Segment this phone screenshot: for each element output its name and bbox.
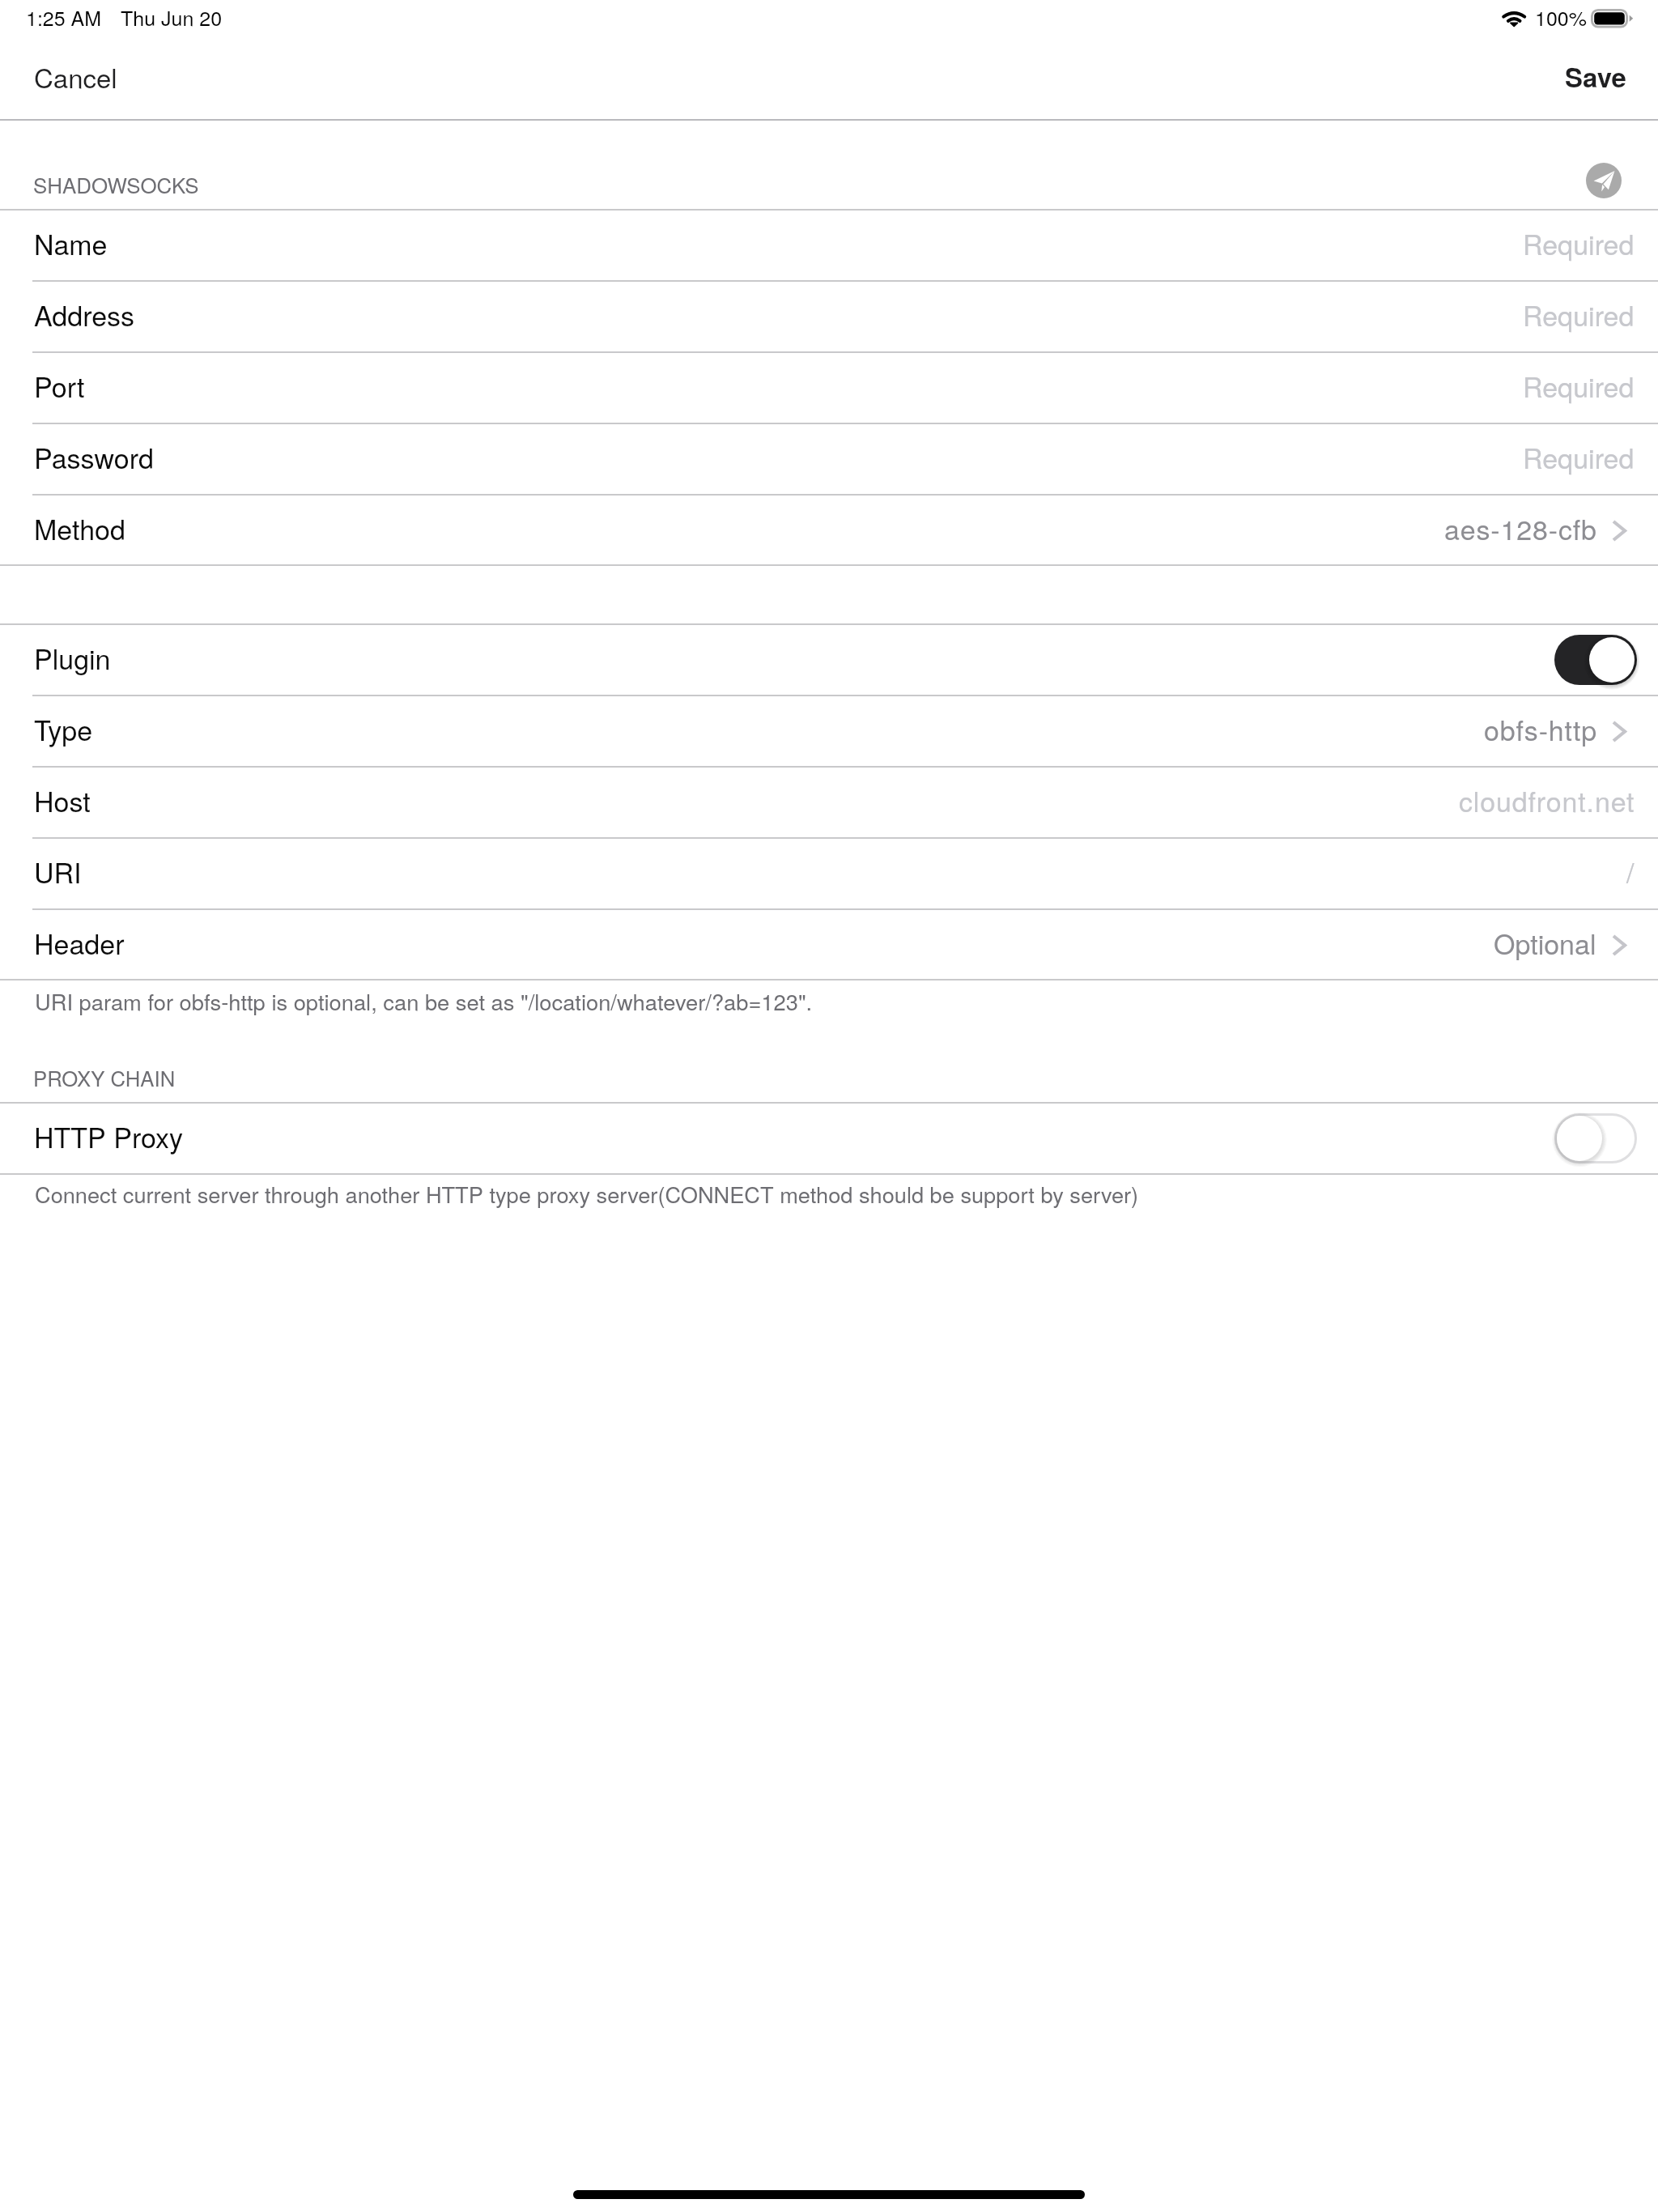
staticText: Required bbox=[1523, 295, 1635, 334]
button[interactable]: Save bbox=[1530, 47, 1658, 121]
button[interactable]: Plugin bbox=[0, 624, 1658, 696]
button[interactable]: Port bbox=[0, 352, 1658, 423]
staticText: Address bbox=[34, 295, 135, 334]
button[interactable]: Share bbox=[1586, 163, 1622, 198]
button[interactable]: URI bbox=[0, 838, 1658, 909]
staticText: Required bbox=[1523, 366, 1635, 406]
staticText: 1:25 AM bbox=[26, 2, 102, 32]
button[interactable]: Cancel bbox=[0, 47, 149, 121]
staticText: HTTP Proxy bbox=[34, 1117, 184, 1156]
staticText: Connect current server through another H… bbox=[35, 1178, 1139, 1210]
staticText: PROXY CHAIN bbox=[33, 1062, 176, 1092]
staticText: obfs-http bbox=[1484, 709, 1597, 749]
staticText: Required bbox=[1523, 223, 1635, 263]
staticText: Header bbox=[34, 923, 125, 963]
button[interactable]: Address bbox=[0, 281, 1658, 352]
staticText: Required bbox=[1523, 437, 1635, 477]
staticText: 100% bbox=[1535, 2, 1587, 32]
button[interactable]: Switch off bbox=[1554, 1113, 1637, 1163]
button[interactable]: Type bbox=[0, 696, 1658, 767]
staticText: URI bbox=[34, 852, 82, 891]
staticText: Thu Jun 20 bbox=[121, 2, 223, 32]
staticText: Type bbox=[34, 709, 93, 749]
staticText: cloudfront.net bbox=[1459, 781, 1635, 820]
button[interactable]: Host bbox=[0, 767, 1658, 838]
staticText: Password bbox=[34, 437, 154, 477]
staticText: Save bbox=[1565, 57, 1626, 96]
staticText: URI param for obfs-http is optional, can… bbox=[35, 985, 813, 1017]
staticText: Host bbox=[34, 781, 91, 820]
staticText: aes-128-cfb bbox=[1444, 508, 1597, 548]
button[interactable]: Switch on bbox=[1554, 635, 1637, 685]
staticText: / bbox=[1626, 852, 1635, 891]
staticText: Port bbox=[34, 366, 85, 406]
button[interactable]: HTTP Proxy bbox=[0, 1103, 1658, 1174]
button[interactable]: Header bbox=[0, 909, 1658, 981]
button[interactable]: Method bbox=[0, 495, 1658, 566]
staticText: Method bbox=[34, 508, 125, 548]
staticText: Optional bbox=[1494, 923, 1596, 963]
staticText: Cancel bbox=[34, 57, 117, 96]
button[interactable]: Password bbox=[0, 423, 1658, 495]
staticText: Name bbox=[34, 223, 108, 263]
button[interactable]: Name bbox=[0, 210, 1658, 281]
staticText: SHADOWSOCKS bbox=[33, 169, 199, 199]
staticText: Plugin bbox=[34, 638, 111, 678]
